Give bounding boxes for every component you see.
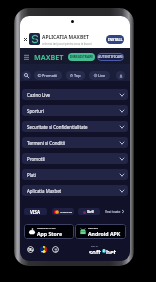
button[interactable]: Skrill [78, 208, 100, 215]
button[interactable]: 18 plus [27, 246, 34, 253]
button[interactable]: Sporturi [22, 105, 128, 116]
button[interactable]: Romania [40, 246, 47, 253]
button[interactable]: ONJN licence [52, 246, 59, 253]
staticText: 18+ [28, 248, 34, 252]
staticText: cele mai tari jocuri pentru ca sa te buc… [42, 42, 92, 46]
staticText: Aplicatia Maxbet [27, 188, 62, 194]
button[interactable]: INREGISTRARE [68, 53, 95, 61]
staticText: Download on the [37, 227, 56, 230]
button[interactable]: Securitate si Confidentialitate [22, 121, 128, 132]
button[interactable]: Live [89, 71, 110, 80]
button[interactable]: Download on the [24, 224, 74, 239]
staticText: Termeni si Conditii [27, 140, 66, 146]
staticText: Plati [27, 172, 36, 178]
staticText: VISA [30, 209, 41, 215]
staticText: INSTALL [108, 37, 123, 42]
button[interactable]: Account [116, 71, 125, 80]
staticText: Cazino Live [27, 92, 51, 98]
button[interactable]: Plati [22, 169, 128, 180]
staticText: soft [89, 248, 102, 254]
staticText: Top [74, 73, 81, 78]
staticText: AUTENTIFICARE [98, 55, 124, 59]
button[interactable]: Aplicatia Maxbet [22, 185, 128, 196]
staticText: Promotii [42, 73, 58, 78]
button[interactable]: Menu [24, 52, 29, 62]
staticText: part of [91, 245, 98, 248]
staticText: Live [98, 73, 106, 78]
button[interactable]: Promotii [22, 153, 128, 164]
staticText: App Store [37, 230, 63, 237]
button[interactable]: AUTENTIFICARE [97, 53, 124, 61]
staticText: mastercard [60, 211, 73, 214]
staticText: Sporturi [27, 108, 44, 114]
staticText: bet [106, 248, 117, 254]
button[interactable]: Termeni si Conditii [22, 137, 128, 148]
staticText: Securitate si Confidentialitate [27, 124, 88, 130]
button[interactable]: Vezi toate [105, 209, 124, 214]
button[interactable]: Top [66, 71, 85, 80]
staticText: Skrill [87, 210, 95, 214]
staticText: Vezi toate [105, 209, 121, 214]
button[interactable]: mastercard [52, 208, 74, 215]
button[interactable]: INSTALL [106, 35, 124, 44]
button[interactable]: Close [23, 33, 27, 45]
button[interactable]: Search [22, 71, 31, 80]
button[interactable]: Descarca [75, 224, 126, 239]
staticText: INREGISTRARE [70, 55, 94, 59]
staticText: APLICATIA MAXBET [42, 34, 89, 41]
button[interactable]: VISA [24, 208, 47, 215]
staticText: 2 [103, 249, 105, 253]
button[interactable]: Promotii [34, 71, 62, 80]
button[interactable]: Cazino Live [22, 89, 128, 100]
staticText: MAXBET [34, 52, 64, 62]
staticText: Promotii [27, 156, 45, 162]
staticText: Descarca [88, 227, 98, 230]
staticText: Android APK [88, 230, 121, 237]
